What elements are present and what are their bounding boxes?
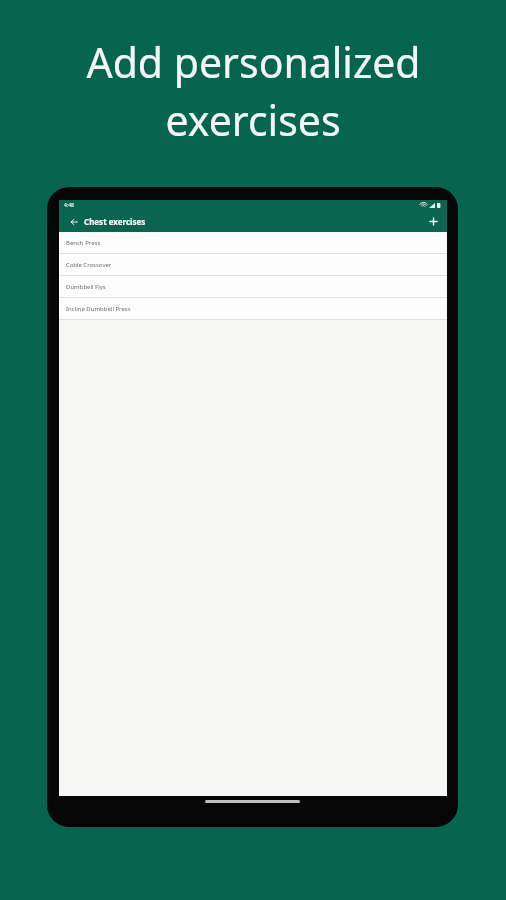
staticText: exercises [165, 92, 341, 148]
staticText: Chest exercises [84, 216, 146, 227]
button[interactable]: Cable Crossover [59, 254, 447, 275]
staticText: 4:48 [64, 202, 74, 209]
staticText: Dumbbell Flys [66, 283, 106, 291]
staticText: Add personalized [86, 34, 421, 90]
button[interactable]: Bench Press [59, 232, 447, 253]
button[interactable]: Incline Dumbbell Press [59, 298, 447, 319]
button[interactable]: Add exercise [426, 214, 440, 228]
staticText: Cable Crossover [66, 261, 112, 269]
button[interactable]: Back [67, 215, 80, 228]
staticText: Bench Press [66, 239, 101, 247]
staticText: Incline Dumbbell Press [66, 305, 131, 313]
button[interactable]: Dumbbell Flys [59, 276, 447, 297]
